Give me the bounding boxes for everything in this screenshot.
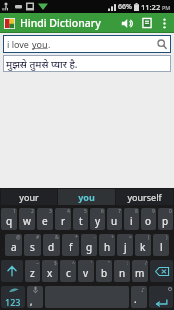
staticText: o [145, 214, 152, 228]
staticText: m [135, 266, 145, 280]
other: Search [157, 39, 167, 49]
staticText: e [42, 214, 48, 228]
button[interactable]: $ [42, 260, 58, 282]
staticText: q [6, 214, 13, 228]
staticText: x [47, 266, 53, 280]
button[interactable]: ( [135, 234, 151, 256]
staticText: v [83, 266, 89, 280]
staticText: 4 [67, 208, 70, 215]
staticText: z [30, 266, 35, 280]
staticText: ~ [36, 260, 39, 267]
staticText: w [23, 214, 31, 228]
button[interactable]: 3 [37, 208, 53, 230]
staticText: PM [162, 4, 171, 11]
staticText: p [162, 214, 169, 228]
button[interactable]: * [62, 234, 79, 256]
button[interactable]: Symbols [1, 286, 25, 308]
button[interactable]: 8 [124, 208, 139, 230]
staticText: 1 [13, 208, 16, 215]
staticText: : [127, 260, 129, 267]
button[interactable]: Enter [149, 286, 173, 308]
staticText: k [140, 240, 146, 254]
staticText: & [55, 234, 59, 241]
button[interactable]: you [58, 189, 115, 205]
button[interactable]: ^ [60, 260, 76, 282]
staticText: , [30, 295, 33, 307]
button[interactable]: i love [3, 35, 171, 53]
button[interactable]: your [1, 189, 57, 205]
staticText: 2 [31, 208, 34, 215]
staticText: 6 [101, 208, 104, 215]
staticText: @ [16, 234, 21, 241]
staticText: j [124, 240, 127, 254]
staticText: * [75, 234, 78, 241]
staticText: . [48, 38, 51, 50]
button[interactable]: + [99, 234, 115, 256]
staticText: . [134, 292, 137, 306]
staticText: 123 [5, 296, 21, 308]
button[interactable]: - [81, 234, 97, 256]
staticText: = [129, 234, 132, 241]
button[interactable]: / [132, 260, 148, 282]
staticText: c [66, 266, 71, 280]
button[interactable]: More options [157, 13, 171, 33]
button[interactable]: ~ [25, 260, 40, 282]
button[interactable]: Shift [1, 260, 23, 282]
staticText: 8 [135, 208, 138, 215]
button[interactable]: ♪ [131, 286, 147, 308]
button[interactable]: = [117, 234, 133, 256]
button[interactable]: & [43, 234, 60, 256]
staticText: n [119, 266, 126, 280]
staticText: 11:22 [141, 2, 161, 12]
button[interactable]: @ [5, 234, 22, 256]
button[interactable]: 5 [73, 208, 88, 230]
staticText: your [19, 191, 39, 203]
button[interactable]: 9 [141, 208, 156, 230]
staticText: 3 [49, 208, 52, 215]
button[interactable]: 4 [55, 208, 71, 230]
staticText: 7 [118, 208, 121, 215]
button[interactable]: : [114, 260, 130, 282]
staticText: b [101, 266, 108, 280]
staticText: / [145, 260, 147, 267]
staticText: " [108, 260, 111, 267]
staticText: u [111, 214, 118, 228]
staticText: y [95, 214, 101, 228]
button[interactable]: मुझसे तुमसे प्यार है. [3, 55, 171, 72]
button[interactable]: ' [78, 260, 94, 282]
button[interactable]: Speak [117, 13, 137, 33]
staticText: d [48, 240, 55, 254]
staticText: l [160, 240, 163, 254]
button[interactable]: Copy [137, 13, 157, 33]
staticText: h [104, 240, 111, 254]
staticText: s [30, 240, 35, 254]
staticText: 66% [118, 2, 132, 12]
staticText: 9 [152, 208, 155, 215]
staticText: a [11, 240, 17, 254]
button[interactable]: 1 [1, 208, 17, 230]
button[interactable]: ) [153, 234, 169, 256]
staticText: + [111, 234, 114, 241]
staticText: 0 [169, 208, 172, 215]
button[interactable]: 0 [158, 208, 173, 230]
button[interactable]: 6 [90, 208, 105, 230]
staticText: ^ [72, 260, 75, 267]
staticText: r [61, 214, 66, 228]
staticText: $ [54, 260, 57, 267]
staticText: you [78, 191, 95, 203]
button[interactable]: " [96, 260, 112, 282]
button[interactable]: 2 [19, 208, 35, 230]
button[interactable]: # [24, 234, 41, 256]
staticText: ' [91, 260, 93, 267]
staticText: ( [148, 234, 150, 241]
staticText: you [32, 38, 48, 50]
button[interactable]: Voice input [27, 286, 43, 308]
button[interactable]: Backspace [150, 260, 173, 282]
button[interactable]: yourself [116, 189, 173, 205]
staticText: i love [7, 38, 32, 50]
staticText: t [79, 214, 83, 228]
button[interactable]: 7 [107, 208, 122, 230]
staticText: f [69, 240, 73, 254]
staticText: yourself [127, 191, 162, 203]
